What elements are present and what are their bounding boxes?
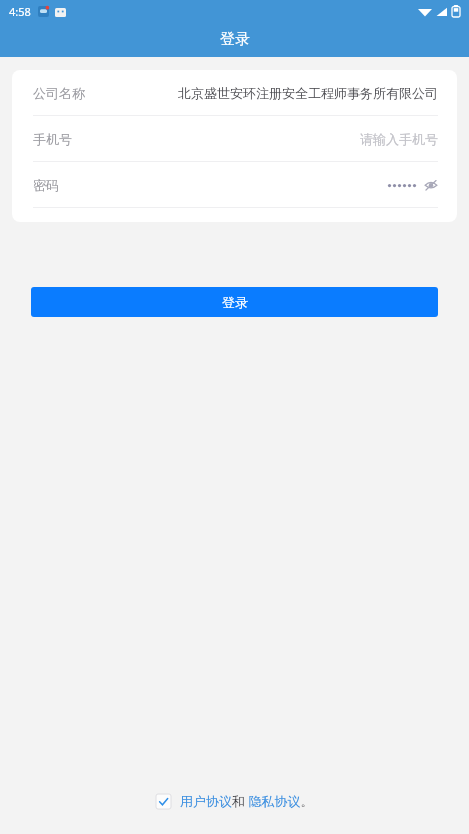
button[interactable]: 登录 <box>31 287 438 317</box>
staticText: 4:58 <box>9 4 31 19</box>
staticText: 登录 <box>222 294 248 310</box>
button[interactable]: 公司名称 <box>12 70 457 115</box>
staticText: 登录 <box>220 30 250 49</box>
button[interactable]: 密码 <box>12 162 457 207</box>
staticText: 手机号 <box>33 131 72 147</box>
button[interactable]: 用户协议和 隐私协议。 <box>180 792 314 810</box>
staticText: 密码 <box>33 177 59 193</box>
button[interactable]: Agree to terms <box>156 794 171 809</box>
button[interactable]: Show password <box>424 178 438 192</box>
staticText: 北京盛世安环注册安全工程师事务所有限公司 <box>178 85 438 101</box>
staticText: 请输入手机号 <box>360 131 438 147</box>
staticText: 用户协议和 隐私协议。 <box>180 792 314 810</box>
staticText: 公司名称 <box>33 85 85 101</box>
button[interactable]: 手机号 <box>12 116 457 161</box>
